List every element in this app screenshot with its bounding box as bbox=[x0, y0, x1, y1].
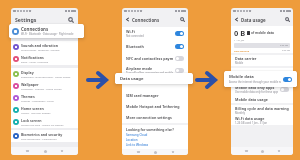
button[interactable]: Home screen bbox=[11, 104, 78, 116]
staticText: Mobile data usage bbox=[235, 97, 268, 102]
staticText: Wallpaper bbox=[21, 82, 39, 87]
staticText: Mobile bbox=[235, 61, 244, 65]
staticText: Wi-Fi data usage bbox=[235, 116, 265, 121]
staticText: 1.24 GB used 1 Jan - 31 Jan bbox=[235, 121, 268, 125]
button[interactable]: Airplane mode bbox=[122, 64, 188, 77]
staticText: Notifications bbox=[21, 55, 44, 60]
button[interactable]: Toggle bbox=[280, 87, 289, 92]
button[interactable]: Back bbox=[125, 17, 130, 22]
button[interactable]: Notifications bbox=[11, 53, 78, 65]
staticText: Sounds and vibration bbox=[21, 43, 58, 48]
staticText: Home screen bbox=[21, 106, 44, 111]
staticText: Bluetooth bbox=[126, 44, 144, 49]
button[interactable]: Samsung Cloud bbox=[126, 133, 148, 137]
button[interactable]: Bluetooth bbox=[122, 40, 188, 52]
button[interactable]: Home bbox=[154, 151, 157, 154]
button[interactable]: Wi-Fi bbox=[122, 27, 188, 40]
button[interactable]: Toggle bbox=[175, 68, 184, 73]
staticText: Data usage bbox=[120, 76, 144, 82]
button[interactable]: Search bbox=[180, 17, 185, 22]
staticText: Screen lock type · Always On Display bbox=[21, 123, 64, 126]
staticText: Sound mode · Ringtone · Volume bbox=[21, 48, 60, 51]
button[interactable]: Home bbox=[261, 150, 264, 153]
staticText: Display bbox=[21, 70, 34, 75]
button[interactable]: Search bbox=[68, 17, 74, 23]
button[interactable]: Billing cycle and data warning bbox=[231, 105, 293, 115]
staticText: Data carrier bbox=[235, 56, 257, 61]
button[interactable]: Display bbox=[11, 68, 78, 80]
button[interactable]: SIM card manager bbox=[122, 90, 188, 101]
button[interactable]: Toggle bbox=[175, 56, 184, 61]
button[interactable]: Wi-Fi data usage bbox=[231, 115, 293, 125]
staticText: Wi-Fi · Bluetooth · Data usage · Flight … bbox=[21, 32, 74, 36]
staticText: Themes · Wallpapers · Icons bbox=[21, 99, 54, 102]
staticText: Wi-Fi bbox=[126, 29, 135, 34]
staticText: Mobile data only apps bbox=[235, 85, 275, 90]
staticText: Face recognition · Fingerprints bbox=[21, 137, 57, 140]
staticText: Not connected bbox=[126, 34, 144, 38]
button[interactable]: Mobile data usage bbox=[231, 95, 293, 103]
staticText: Monthly bbox=[235, 111, 246, 115]
button[interactable]: Biometrics and security bbox=[11, 130, 78, 142]
staticText: Themes bbox=[21, 94, 35, 99]
staticText: Settings bbox=[15, 16, 37, 23]
button[interactable]: Link to Windows bbox=[126, 143, 149, 147]
staticText: Turn off calling, messaging and mobile d… bbox=[126, 71, 173, 75]
staticText: Data warning bbox=[234, 49, 250, 52]
staticText: Brightness · Blue light filter · Home sc… bbox=[21, 75, 71, 78]
staticText: Layout · App icon badges bbox=[21, 111, 51, 114]
staticText: 2.00 GB bbox=[280, 44, 288, 47]
staticText: of mobile data bbox=[251, 31, 275, 35]
staticText: Connections bbox=[132, 17, 160, 23]
button[interactable]: Location bbox=[126, 138, 138, 142]
button[interactable]: Home bbox=[44, 150, 47, 153]
staticText: Billing cycle and data warning bbox=[235, 106, 289, 111]
staticText: Biometrics and security bbox=[21, 132, 63, 137]
staticText: Lock screen bbox=[21, 118, 42, 123]
button[interactable]: Mobile data only apps bbox=[231, 84, 293, 95]
button[interactable]: Toggle bbox=[175, 44, 184, 49]
staticText: SIM card manager bbox=[126, 93, 159, 98]
button[interactable]: Search bbox=[285, 17, 290, 22]
staticText: 0 B bbox=[234, 28, 246, 38]
button[interactable]: Toggle bbox=[283, 77, 292, 82]
button[interactable]: Data carrier bbox=[231, 55, 293, 66]
staticText: Mobile data bbox=[229, 74, 254, 80]
button[interactable]: Wallpaper bbox=[11, 80, 78, 92]
button[interactable]: Back bbox=[234, 17, 239, 22]
staticText: NFC and contactless payments bbox=[126, 56, 173, 61]
staticText: Wallpaper · Themes · Home screen bbox=[21, 87, 62, 90]
staticText: Connections bbox=[21, 26, 49, 32]
button[interactable]: Lock screen bbox=[11, 116, 78, 128]
button[interactable]: Themes bbox=[11, 92, 78, 104]
staticText: Use mobile data only for these apps bbox=[235, 90, 278, 94]
staticText: Access the internet through your mobile … bbox=[229, 80, 281, 84]
button[interactable]: NFC and contactless payments bbox=[122, 52, 188, 64]
staticText: 2.00 GB bbox=[282, 49, 290, 52]
staticText: Looking for something else? bbox=[126, 127, 174, 132]
button[interactable]: Mobile Hotspot and Tethering bbox=[122, 101, 188, 112]
button[interactable]: Data usage bbox=[115, 73, 193, 84]
button[interactable]: Mobile data bbox=[224, 71, 297, 87]
staticText: More connection settings bbox=[126, 115, 172, 120]
button[interactable]: Sounds and vibration bbox=[11, 41, 78, 53]
staticText: Mobile Hotspot and Tethering bbox=[126, 104, 180, 109]
staticText: 1 - 31 Jan bbox=[234, 38, 245, 41]
staticText: Airplane mode bbox=[126, 66, 153, 71]
staticText: Data usage bbox=[241, 17, 266, 23]
staticText: Block · Allow · Prioritise bbox=[21, 60, 49, 63]
button[interactable]: More connection settings bbox=[122, 112, 188, 123]
button[interactable]: Toggle bbox=[175, 31, 184, 36]
button[interactable]: Connections bbox=[9, 24, 84, 38]
